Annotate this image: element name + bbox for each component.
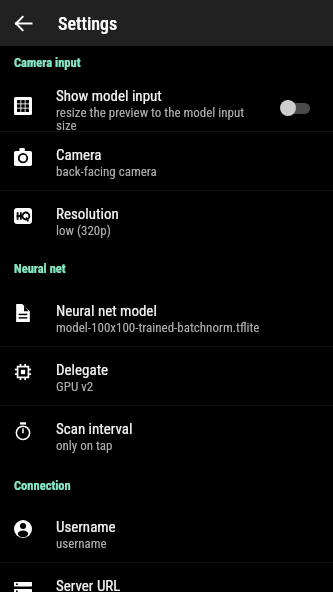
button[interactable]: Delegate xyxy=(0,347,333,406)
staticText: back-facing camera xyxy=(56,164,157,179)
button[interactable]: Server URL xyxy=(0,563,333,592)
staticText: Camera xyxy=(56,146,102,164)
staticText: Settings xyxy=(58,13,118,34)
button[interactable]: Show model input xyxy=(277,87,333,132)
button[interactable]: Resolution xyxy=(0,191,333,250)
button[interactable]: Show model input xyxy=(0,73,333,132)
staticText: Camera input xyxy=(14,55,81,70)
staticText: Username xyxy=(56,518,116,536)
staticText: only on tap xyxy=(56,438,113,453)
staticText: resize the preview to the model input si… xyxy=(56,105,252,132)
staticText: GPU v2 xyxy=(56,379,94,394)
staticText: Neural net model xyxy=(56,302,157,320)
button[interactable]: Camera xyxy=(0,132,333,191)
staticText: Resolution xyxy=(56,205,119,223)
button[interactable]: Back xyxy=(0,0,46,46)
staticText: username xyxy=(56,536,107,551)
staticText: Scan interval xyxy=(56,420,133,438)
staticText: low (320p) xyxy=(56,223,111,238)
staticText: Delegate xyxy=(56,361,109,379)
button[interactable]: Neural net model xyxy=(0,288,333,347)
staticText: Connection xyxy=(14,478,71,493)
staticText: Server URL xyxy=(56,577,121,592)
staticText: Neural net xyxy=(14,261,66,276)
button[interactable]: Scan interval xyxy=(0,406,333,465)
staticText: Show model input xyxy=(56,87,162,105)
staticText: model-100x100-trained-batchnorm.tflite xyxy=(56,320,260,335)
button[interactable]: Username xyxy=(0,504,333,563)
